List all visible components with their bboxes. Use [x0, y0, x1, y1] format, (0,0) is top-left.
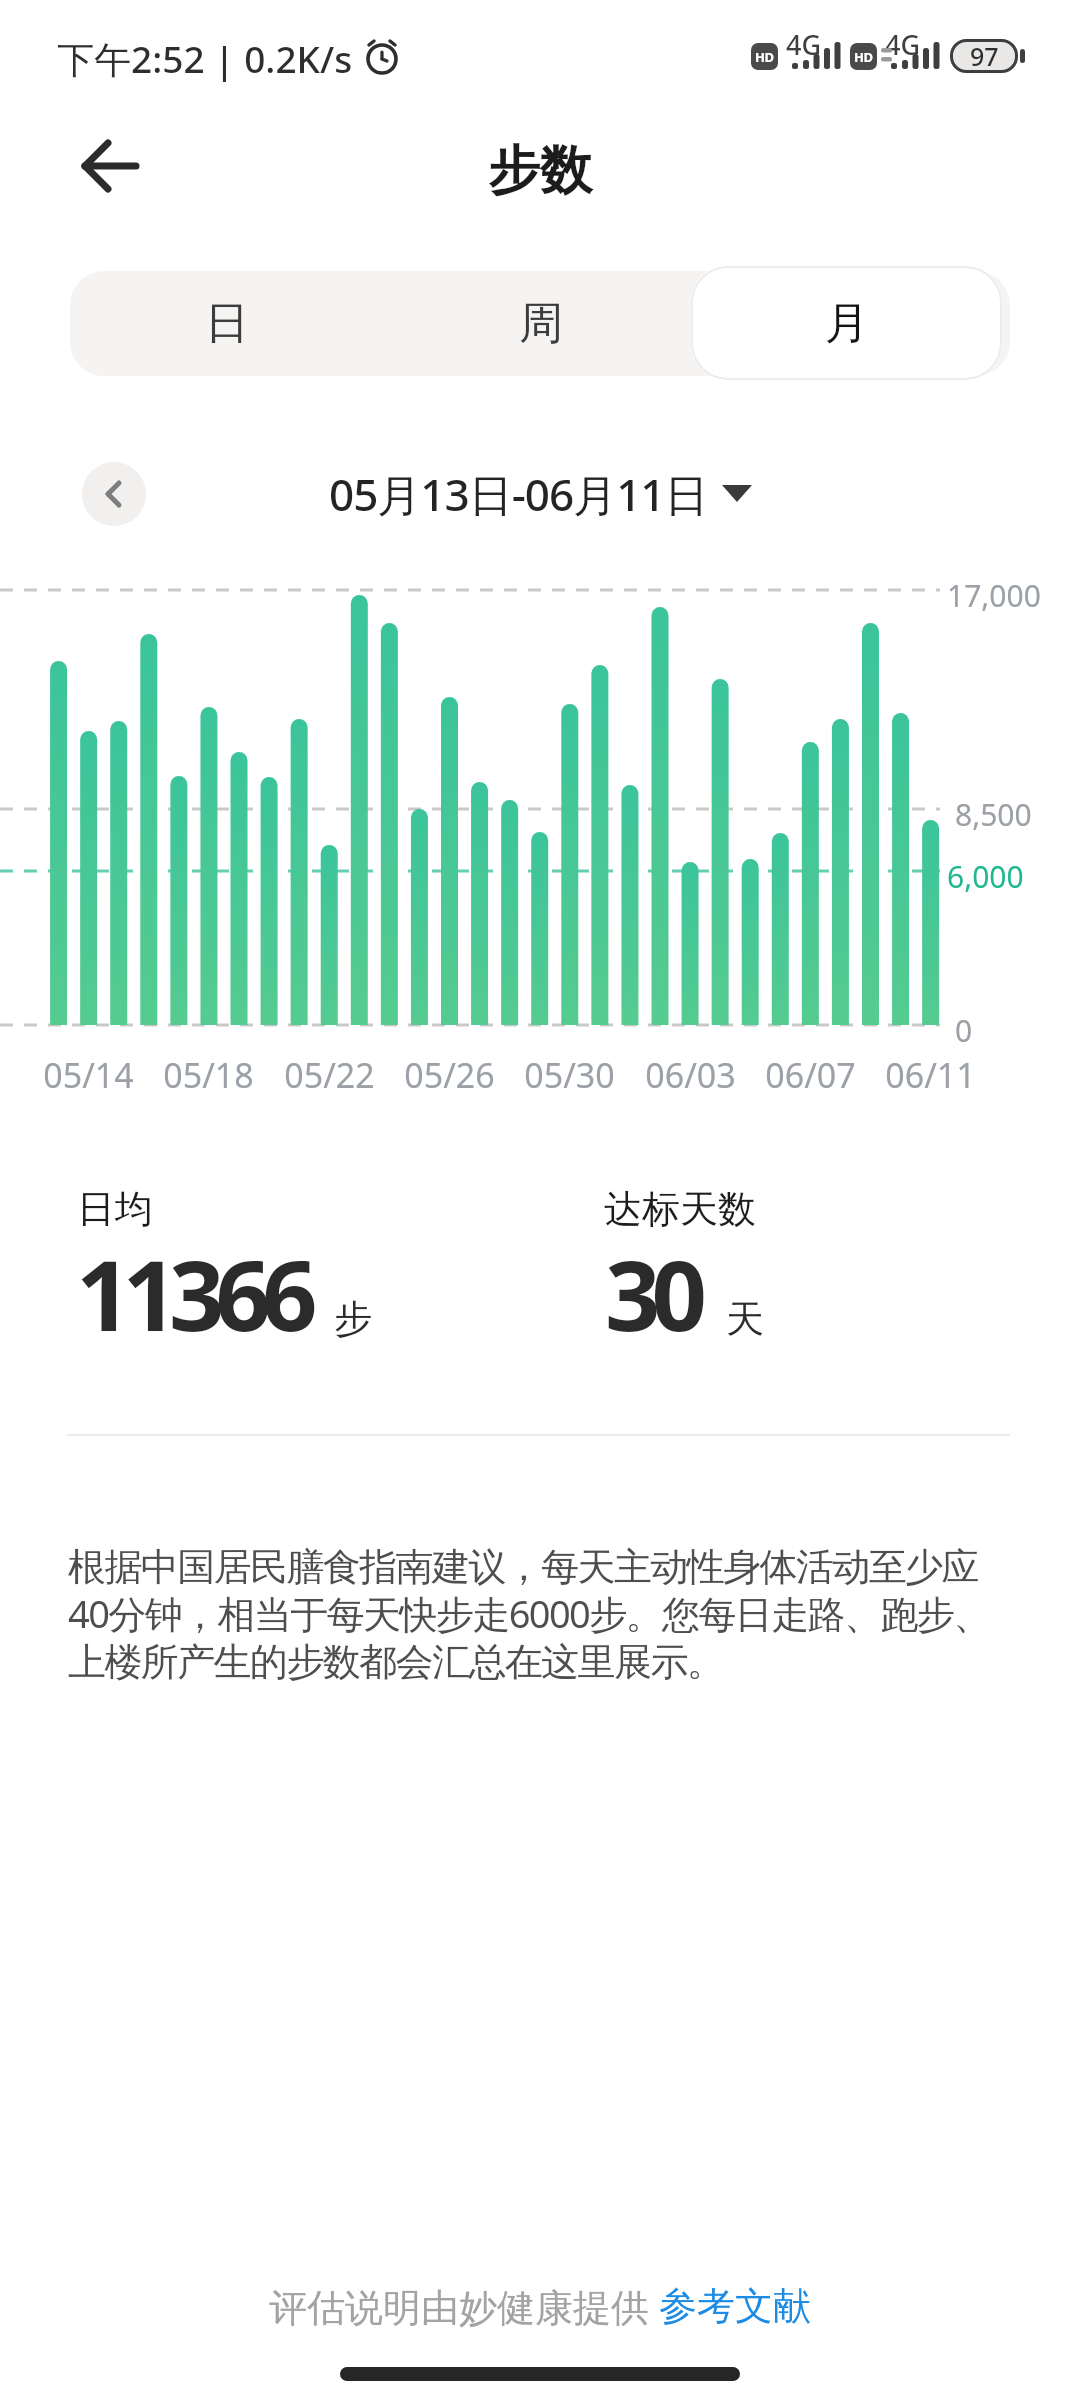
button[interactable] — [82, 462, 146, 526]
staticText: 05/22 — [284, 1052, 375, 1098]
button[interactable]: 日 — [70, 271, 383, 376]
staticText: 达标天数 — [604, 1185, 756, 1233]
staticText: 05/26 — [404, 1052, 495, 1098]
staticText: 评估说明由妙健康提供 — [269, 2280, 659, 2332]
staticText: 日均 — [77, 1185, 153, 1233]
staticText: 6,000 — [947, 856, 1024, 897]
button[interactable]: 参考文献 — [659, 2282, 811, 2330]
staticText: 30 — [605, 1227, 698, 1359]
button[interactable]: 月 — [690, 271, 1003, 376]
staticText: 天 — [726, 1295, 764, 1343]
staticText: 周 — [519, 296, 563, 351]
staticText: 17,000 — [947, 575, 1041, 616]
staticText: 0 — [955, 1010, 973, 1051]
staticText: 8,500 — [955, 794, 1032, 835]
staticText: 05/30 — [524, 1052, 615, 1098]
staticText: 05/18 — [163, 1052, 254, 1098]
staticText: 步 — [334, 1295, 372, 1343]
staticText: 根据中国居民膳食指南建议，每天主动性身体活动至少应 40分钟，相当于每天快步走6… — [68, 1543, 990, 1686]
staticText: 下午2:52 | 0.2K/s — [57, 33, 353, 84]
button[interactable]: 05月13日-06月11日 — [0, 462, 1080, 526]
staticText: 月 — [825, 296, 869, 351]
staticText: 05/14 — [43, 1052, 134, 1098]
staticText: HD — [854, 48, 873, 66]
button[interactable] — [60, 130, 160, 202]
staticText: 4G — [885, 26, 921, 63]
button[interactable]: 周 — [384, 271, 697, 376]
staticText: HD — [755, 48, 774, 66]
staticText: 06/07 — [765, 1052, 856, 1098]
staticText: 11366 — [76, 1227, 309, 1359]
staticText: 日 — [205, 296, 249, 351]
staticText: 05月13日-06月11日 — [329, 464, 708, 524]
staticText: 97 — [970, 39, 999, 73]
staticText: 06/11 — [885, 1052, 976, 1098]
staticText: 参考文献 — [659, 2282, 811, 2330]
staticText: 步数 — [488, 138, 592, 204]
staticText: 06/03 — [645, 1052, 736, 1098]
staticText: 4G — [786, 26, 822, 63]
